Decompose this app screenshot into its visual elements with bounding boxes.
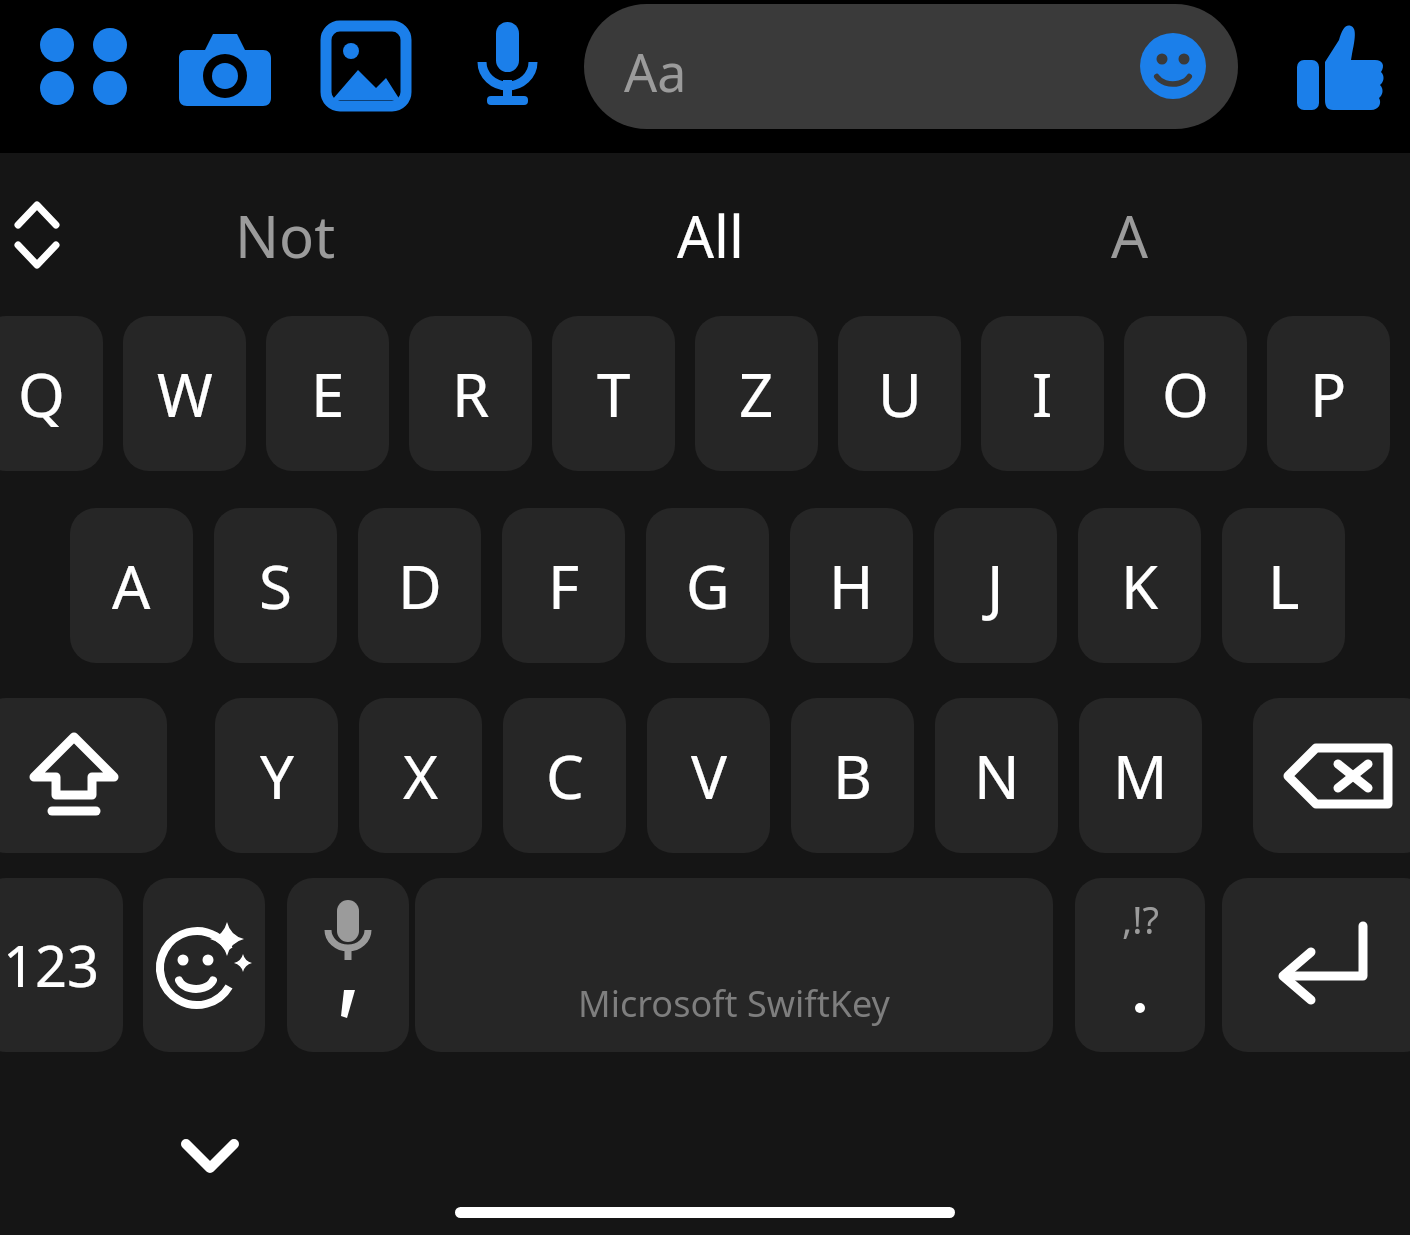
button[interactable]: M — [1079, 698, 1202, 853]
button[interactable]: H — [790, 508, 913, 663]
button[interactable]: V — [647, 698, 770, 853]
button[interactable]: Y — [215, 698, 338, 853]
button[interactable]: G — [646, 508, 769, 663]
staticText: J — [987, 545, 1004, 627]
button[interactable]: Send like — [1295, 20, 1385, 115]
staticText: K — [1121, 545, 1159, 627]
button[interactable]: K — [1078, 508, 1201, 663]
button[interactable]: P — [1267, 316, 1390, 471]
button[interactable]: J — [934, 508, 1057, 663]
staticText: I — [1032, 353, 1053, 435]
staticText: A — [1111, 196, 1149, 275]
staticText: P — [1310, 353, 1347, 435]
staticText: O — [1162, 353, 1209, 435]
button[interactable]: Hide keyboard — [160, 1110, 260, 1200]
button[interactable]: More apps — [30, 20, 140, 110]
staticText: D — [398, 545, 442, 627]
button[interactable]: 123 — [0, 878, 123, 1052]
staticText: R — [452, 353, 490, 435]
button[interactable]: C — [503, 698, 626, 853]
staticText: B — [833, 735, 872, 817]
button[interactable]: Voice input and comma — [287, 878, 409, 1052]
staticText: T — [597, 353, 631, 435]
staticText: 123 — [3, 927, 100, 1003]
staticText: M — [1113, 735, 1168, 817]
button[interactable]: S — [214, 508, 337, 663]
button[interactable]: Not — [130, 175, 440, 295]
button[interactable]: Shift — [0, 698, 167, 853]
staticText: C — [546, 735, 584, 817]
button[interactable]: Z — [695, 316, 818, 471]
staticText: W — [157, 353, 213, 435]
staticText: Not — [235, 196, 336, 275]
button[interactable]: A — [975, 175, 1285, 295]
button[interactable]: Gallery — [320, 20, 412, 112]
staticText: Z — [739, 353, 774, 435]
button[interactable]: L — [1222, 508, 1345, 663]
button[interactable]: Emoji — [1140, 33, 1207, 100]
button[interactable]: Voice message — [470, 18, 545, 114]
button[interactable]: U — [838, 316, 961, 471]
button[interactable]: X — [359, 698, 482, 853]
staticText: All — [677, 196, 744, 275]
button[interactable]: Punctuation and period — [1075, 878, 1205, 1052]
button[interactable]: Microsoft SwiftKey — [415, 878, 1053, 1052]
button[interactable]: Aa — [584, 4, 1238, 129]
button[interactable]: E — [266, 316, 389, 471]
button[interactable]: Camera — [175, 18, 275, 113]
button[interactable]: Backspace — [1253, 698, 1410, 853]
staticText: E — [311, 353, 345, 435]
staticText: V — [691, 735, 727, 817]
button[interactable]: I — [981, 316, 1104, 471]
button[interactable]: F — [502, 508, 625, 663]
button[interactable]: A — [70, 508, 193, 663]
button[interactable]: Emoji and stickers — [143, 878, 265, 1052]
staticText: X — [403, 735, 439, 817]
button[interactable]: Q — [0, 316, 103, 471]
staticText: Aa — [624, 36, 687, 107]
staticText: U — [878, 353, 922, 435]
button[interactable]: O — [1124, 316, 1247, 471]
staticText: H — [829, 545, 874, 627]
button[interactable]: N — [935, 698, 1058, 853]
staticText: Microsoft SwiftKey — [578, 979, 890, 1028]
button[interactable]: T — [552, 316, 675, 471]
staticText: Q — [18, 353, 65, 435]
button[interactable]: W — [123, 316, 246, 471]
button[interactable]: Enter — [1222, 878, 1410, 1052]
staticText: S — [259, 545, 292, 627]
staticText: ,!? — [1122, 893, 1159, 945]
staticText: Y — [260, 735, 294, 817]
staticText: G — [686, 545, 730, 627]
staticText: F — [548, 545, 580, 627]
staticText: A — [112, 545, 151, 627]
button[interactable]: All — [555, 175, 865, 295]
button[interactable]: D — [358, 508, 481, 663]
button[interactable]: Expand — [6, 195, 70, 275]
button[interactable]: B — [791, 698, 914, 853]
staticText: L — [1268, 545, 1300, 627]
staticText: N — [974, 735, 1020, 817]
button[interactable]: R — [409, 316, 532, 471]
